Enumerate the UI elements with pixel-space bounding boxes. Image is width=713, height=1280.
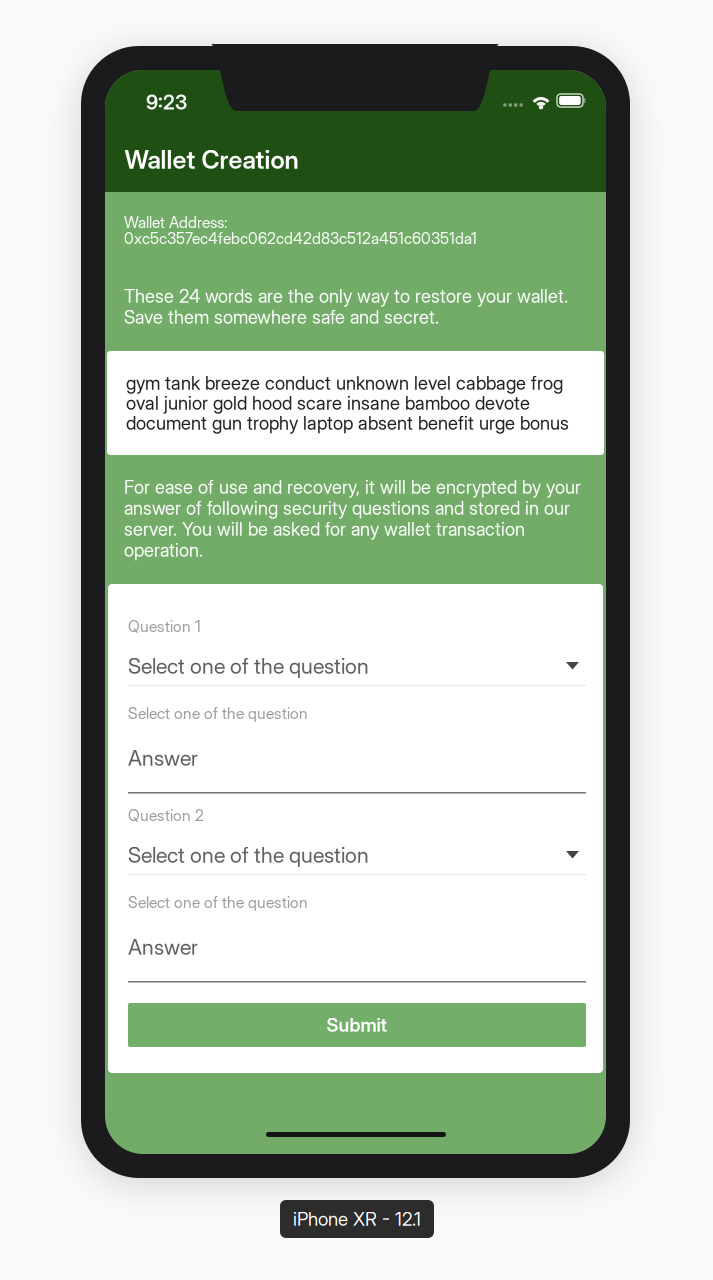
staticText: Answer bbox=[128, 745, 198, 771]
staticText: Select one of the question bbox=[128, 893, 308, 912]
button[interactable]: Answer bbox=[128, 745, 586, 799]
staticText: Question 2 bbox=[128, 806, 204, 825]
staticText: Save them somewhere safe and secret. bbox=[124, 306, 439, 328]
staticText: Select one of the question bbox=[128, 842, 369, 868]
staticText: operation. bbox=[124, 539, 203, 561]
staticText: These 24 words are the only way to resto… bbox=[124, 285, 568, 307]
staticText: 9:23 bbox=[146, 90, 187, 114]
staticText: Wallet Address: bbox=[124, 213, 227, 232]
staticText: Question 1 bbox=[128, 617, 201, 636]
button[interactable]: Select one of the question bbox=[128, 653, 586, 695]
staticText: server. You will be asked for any wallet… bbox=[124, 518, 525, 540]
button[interactable]: Submit bbox=[128, 1003, 586, 1047]
staticText: Answer bbox=[128, 934, 198, 960]
staticText: iPhone XR - 12.1 bbox=[293, 1208, 421, 1230]
staticText: Select one of the question bbox=[128, 653, 369, 679]
staticText: For ease of use and recovery, it will be… bbox=[124, 476, 581, 498]
staticText: Submit bbox=[326, 1014, 387, 1036]
staticText: gym tank breeze conduct unknown level ca… bbox=[126, 372, 563, 394]
staticText: Select one of the question bbox=[128, 704, 308, 723]
staticText: Wallet Creation bbox=[125, 145, 299, 175]
staticText: document gun trophy laptop absent benefi… bbox=[126, 412, 569, 434]
button[interactable]: Select one of the question bbox=[128, 842, 586, 884]
staticText: 0xc5c357ec4febc062cd42d83c512a451c60351d… bbox=[124, 229, 477, 248]
staticText: oval junior gold hood scare insane bambo… bbox=[126, 392, 530, 414]
staticText: answer of following security questions a… bbox=[124, 497, 570, 519]
button[interactable]: Answer bbox=[128, 934, 586, 988]
